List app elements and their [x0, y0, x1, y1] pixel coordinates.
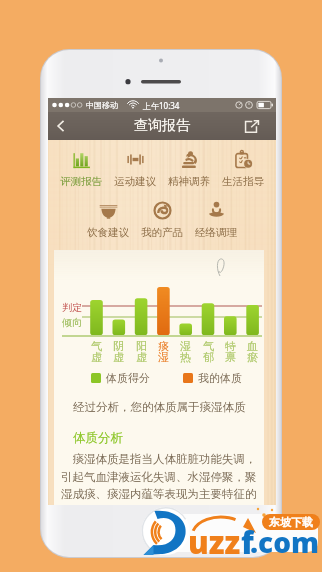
staticText: 热	[178, 350, 193, 364]
button[interactable]: 评测报告	[54, 149, 108, 188]
staticText: 上午10:34	[143, 100, 180, 111]
staticText: 精神调养	[168, 175, 210, 188]
staticText: 判定	[62, 301, 82, 314]
staticText: 血	[245, 339, 260, 353]
staticText: 瘀	[245, 350, 260, 364]
staticText: 经络调理	[195, 226, 237, 239]
staticText: 阳	[134, 339, 149, 353]
staticText: 气	[89, 339, 104, 353]
staticText: 评测报告	[60, 175, 102, 188]
button[interactable]: 饮食建议	[81, 200, 135, 239]
button[interactable]: 运动建议	[108, 149, 162, 188]
staticText: 生活指导	[222, 175, 264, 188]
staticText: 气	[201, 339, 216, 353]
staticText: 湿	[178, 339, 193, 353]
staticText: 倾向	[62, 316, 82, 329]
button[interactable]: Back	[48, 112, 74, 140]
staticText: .com	[250, 523, 320, 561]
staticText: 禀	[223, 350, 238, 364]
staticText: 郁	[201, 350, 216, 364]
button[interactable]: Share	[241, 112, 263, 140]
button[interactable]: 生活指导	[216, 149, 270, 188]
staticText: 痰	[156, 339, 171, 353]
staticText: 东坡下载	[269, 515, 313, 529]
staticText: 经过分析，您的体质属于痰湿体质	[73, 400, 246, 414]
staticText: 饮食建议	[87, 226, 129, 239]
button[interactable]: 精神调养	[162, 149, 216, 188]
staticText: 虚	[134, 350, 149, 364]
staticText: f	[241, 521, 254, 563]
staticText: 运动建议	[114, 175, 156, 188]
staticText: 虚	[89, 350, 104, 364]
staticText: 体质分析	[73, 430, 123, 446]
staticText: 我的体质	[198, 371, 242, 385]
button[interactable]: 经络调理	[189, 200, 243, 239]
staticText: 痰湿体质是指当人体脏脏功能失调，引起气血津液运化失调、水湿停聚，聚湿成痰、痰湿内…	[61, 451, 263, 501]
staticText: 查询报告	[134, 117, 190, 135]
staticText: 阴	[111, 339, 126, 353]
staticText: uzz	[188, 521, 241, 563]
staticText: 湿	[156, 350, 171, 364]
staticText: 体质得分	[106, 371, 150, 385]
staticText: 特	[223, 339, 238, 353]
staticText: 虚	[111, 350, 126, 364]
staticText: 中国移动	[86, 100, 118, 110]
staticText: 我的产品	[141, 226, 183, 239]
button[interactable]: 我的产品	[135, 200, 189, 239]
